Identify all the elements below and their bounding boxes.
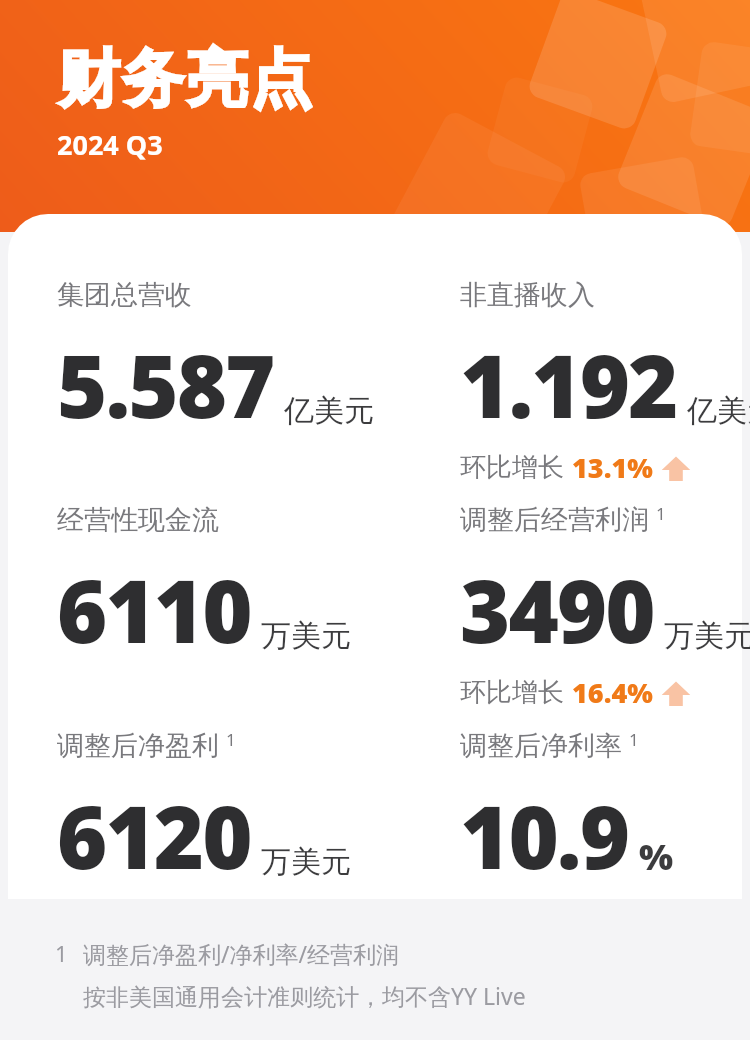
staticText: 财务亮点 bbox=[57, 40, 313, 118]
staticText: 1 bbox=[55, 938, 68, 968]
staticText: 万美元 bbox=[261, 617, 351, 655]
staticText: 非直播收入 bbox=[460, 278, 595, 312]
other: Increase bbox=[659, 676, 693, 710]
button[interactable]: 经营性现金流 bbox=[57, 503, 351, 668]
button[interactable]: 非直播收入 bbox=[460, 278, 750, 486]
staticText: 经营性现金流 bbox=[57, 503, 219, 537]
staticText: 集团总营收 bbox=[57, 278, 192, 312]
staticText: 1.192 bbox=[460, 326, 677, 443]
staticText: % bbox=[639, 832, 674, 881]
staticText: 3490 bbox=[460, 551, 654, 668]
staticText: 10.9 bbox=[460, 777, 629, 894]
staticText: 1 bbox=[656, 502, 666, 525]
button[interactable]: 调整后净盈利 bbox=[57, 729, 351, 894]
staticText: 亿美元 bbox=[284, 392, 374, 430]
staticText: 调整后经营利润 bbox=[460, 503, 649, 537]
button[interactable]: 调整后净利率 bbox=[460, 729, 674, 894]
other: Increase bbox=[659, 451, 693, 485]
staticText: 万美元 bbox=[261, 843, 351, 881]
staticText: 1 bbox=[226, 728, 236, 751]
staticText: 6120 bbox=[57, 777, 251, 894]
staticText: 1 bbox=[629, 728, 639, 751]
staticText: 16.4% bbox=[572, 674, 653, 711]
staticText: 调整后净利率 bbox=[460, 729, 622, 763]
staticText: 调整后净盈利/净利率/经营利润 bbox=[83, 938, 400, 969]
staticText: 万美元 bbox=[664, 617, 750, 655]
staticText: 环比增长 bbox=[460, 451, 564, 484]
staticText: 按非美国通用会计准则统计，均不含YY Live bbox=[83, 980, 526, 1011]
staticText: 6110 bbox=[57, 551, 251, 668]
button[interactable]: 集团总营收 bbox=[57, 278, 374, 443]
button[interactable]: 调整后经营利润 bbox=[460, 503, 750, 711]
staticText: 5.587 bbox=[57, 326, 274, 443]
staticText: 2024 Q3 bbox=[57, 126, 163, 163]
staticText: 亿美元 bbox=[687, 392, 750, 430]
staticText: 环比增长 bbox=[460, 676, 564, 709]
staticText: 13.1% bbox=[572, 449, 653, 486]
staticText: 调整后净盈利 bbox=[57, 729, 219, 763]
